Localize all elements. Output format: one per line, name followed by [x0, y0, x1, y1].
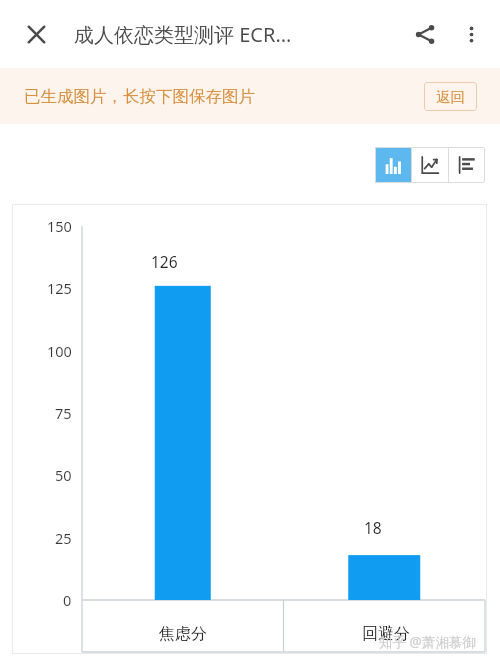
staticText: 返回 — [436, 88, 465, 106]
button[interactable]: 返回 — [424, 82, 477, 111]
staticText: 125 — [47, 278, 72, 298]
button[interactable]: Bar chart — [375, 147, 411, 183]
staticText: 焦虑分 — [159, 624, 207, 644]
staticText: 50 — [55, 465, 72, 485]
staticText: 126 — [151, 251, 178, 272]
button[interactable]: Share — [402, 11, 448, 57]
staticText: 150 — [47, 216, 72, 236]
staticText: 回避分 — [362, 624, 410, 644]
button[interactable]: Line chart — [412, 147, 448, 183]
staticText: 0 — [63, 590, 72, 610]
staticText: 75 — [55, 403, 72, 423]
staticText: 100 — [47, 341, 72, 361]
staticText: 成人依恋类型测评 ECR... — [74, 21, 292, 48]
staticText: 25 — [55, 528, 72, 548]
button[interactable]: More options — [448, 11, 494, 57]
staticText: 18 — [364, 517, 382, 538]
staticText: 已生成图片，长按下图保存图片 — [24, 86, 255, 107]
staticText: 知乎 @萧湘慕御 — [379, 633, 476, 651]
button[interactable]: Horizontal bar chart — [449, 147, 485, 183]
button[interactable]: Close — [13, 11, 59, 57]
